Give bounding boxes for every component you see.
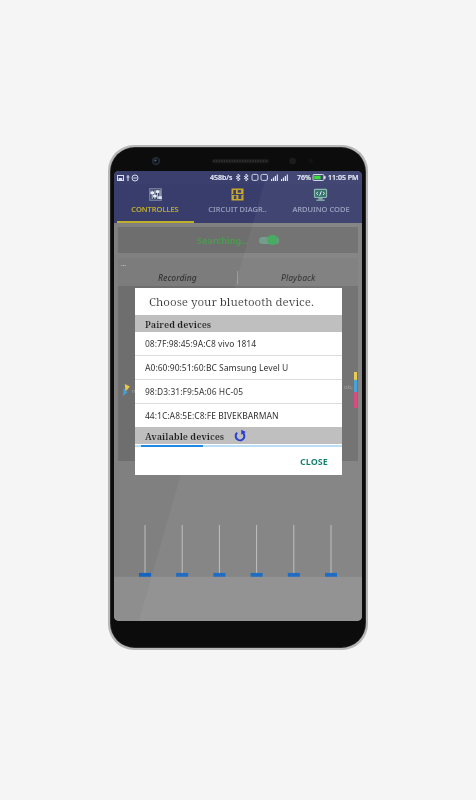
staticText: 11:05 PM [328,173,359,183]
staticText: CLOSE [300,455,328,467]
staticText: ... [121,260,126,268]
staticText: A0:60:90:51:60:BC Samsung Level U [145,362,289,374]
button[interactable]: 44:1C:A8:5E:C8:FE BIVEKBARMAN [135,404,342,427]
button[interactable]: CIRCUIT DIAGR.. [196,184,279,223]
staticText: CIRCUIT DIAGR.. [208,204,267,214]
button[interactable]: CONTROLLES [114,184,196,223]
staticText: 44:1C:A8:5E:C8:FE BIVEKBARMAN [145,410,279,422]
staticText: Searching... [197,234,249,246]
button[interactable]: ARDUINO CODE [279,184,362,223]
staticText: my [132,387,141,395]
button[interactable]: Playback [238,269,358,286]
staticText: CONTROLLES [131,204,179,214]
button[interactable]: A0:60:90:51:60:BC Samsung Level U [135,356,342,379]
staticText: 08:7F:98:45:9A:C8 vivo 1814 [145,338,257,350]
staticText: 76% [297,173,311,183]
staticText: 98:D3:31:F9:5A:06 HC-05 [145,386,244,398]
staticText: 458b/s [210,173,233,183]
button[interactable]: CLOSE [286,449,342,473]
button[interactable]: 98:D3:31:F9:5A:06 HC-05 [135,380,342,403]
button[interactable]: Recording [118,269,237,286]
button[interactable]: Searching... [118,227,358,253]
button[interactable]: Refresh available devices [233,429,247,443]
staticText: Choose your bluetooth device. [149,294,314,310]
staticText: ob; [344,383,353,391]
staticText: Available devices [145,430,225,442]
staticText: ARDUINO CODE [292,204,350,214]
staticText: Recording [158,272,197,284]
staticText: Paired devices [145,318,212,330]
staticText: Playback [281,272,316,284]
button[interactable]: 08:7F:98:45:9A:C8 vivo 1814 [135,332,342,355]
